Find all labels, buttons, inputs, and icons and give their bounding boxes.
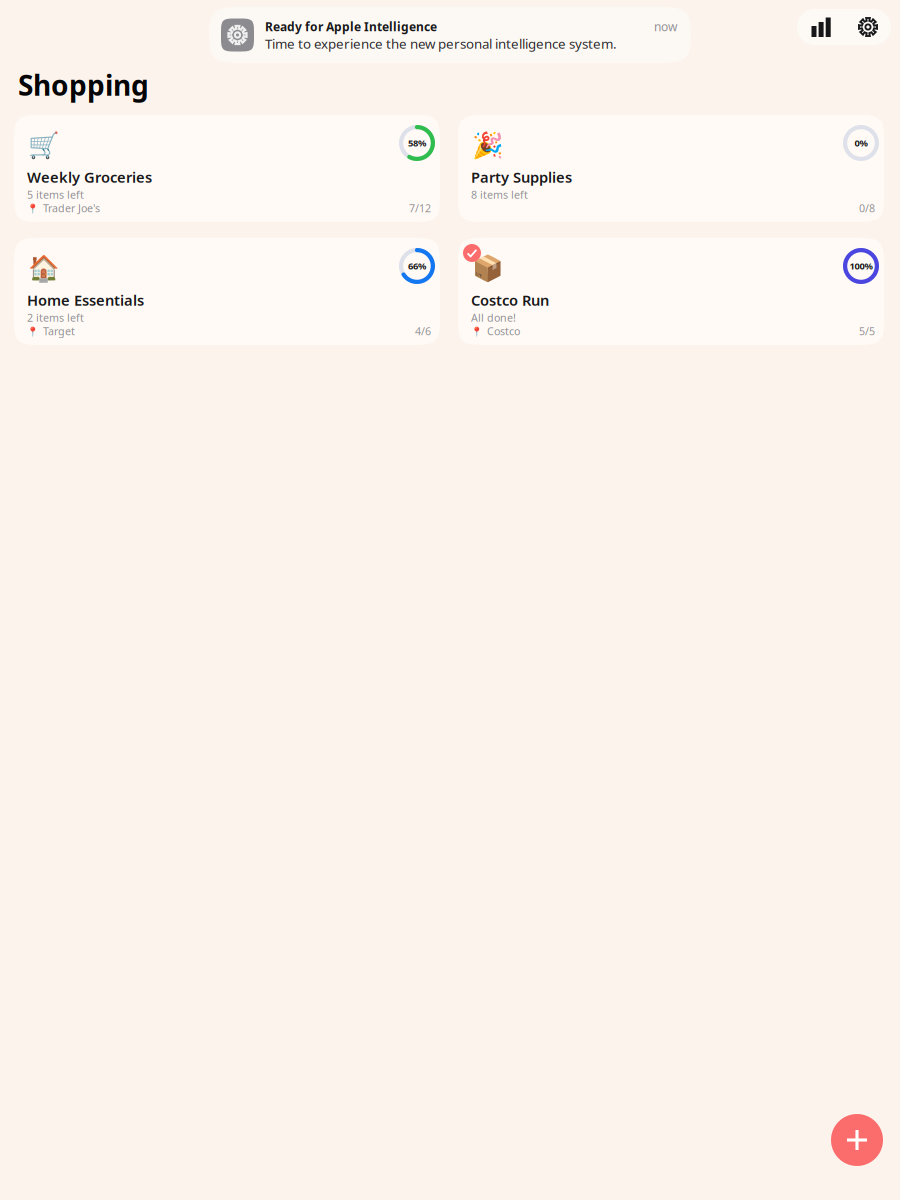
staticText: Target <box>43 324 75 338</box>
staticText: 7/12 <box>409 201 431 215</box>
button[interactable]: 📦 <box>458 238 884 345</box>
button[interactable]: 🏠 <box>14 238 440 345</box>
staticText: Costco <box>487 324 520 338</box>
staticText: 58% <box>408 137 426 149</box>
staticText: 📍 <box>27 204 39 214</box>
staticText: 8 items left <box>471 187 528 202</box>
staticText: 4/6 <box>415 324 431 338</box>
staticText: Ready for Apple Intelligence <box>265 18 437 34</box>
staticText: Shopping <box>18 66 149 104</box>
staticText: 📍 <box>27 327 39 337</box>
staticText: Time to experience the new personal inte… <box>265 35 617 52</box>
staticText: 🛒 <box>28 131 60 160</box>
button[interactable]: New list <box>831 1114 883 1166</box>
staticText: Trader Joe's <box>43 201 100 215</box>
button[interactable]: 🛒 <box>14 115 440 222</box>
button[interactable]: 🎉 <box>458 115 884 222</box>
staticText: All done! <box>471 310 516 325</box>
staticText: Home Essentials <box>27 290 144 310</box>
button[interactable]: Settings <box>845 9 891 45</box>
staticText: 5 items left <box>27 187 84 202</box>
button[interactable]: Statistics <box>797 9 845 45</box>
staticText: 100% <box>849 260 872 272</box>
staticText: 66% <box>408 260 426 272</box>
button[interactable]: Ready for Apple Intelligence <box>209 7 691 63</box>
staticText: 🎉 <box>472 131 504 160</box>
staticText: Costco Run <box>471 290 549 310</box>
staticText: 0/8 <box>859 201 875 215</box>
staticText: Weekly Groceries <box>27 167 152 187</box>
staticText: 🏠 <box>28 254 60 283</box>
staticText: 2 items left <box>27 310 84 325</box>
staticText: 0% <box>854 137 867 149</box>
staticText: now <box>654 18 677 34</box>
staticText: 📍 <box>471 327 483 337</box>
staticText: Party Supplies <box>471 167 572 187</box>
staticText: 📦 <box>472 254 504 283</box>
staticText: 5/5 <box>859 324 875 338</box>
